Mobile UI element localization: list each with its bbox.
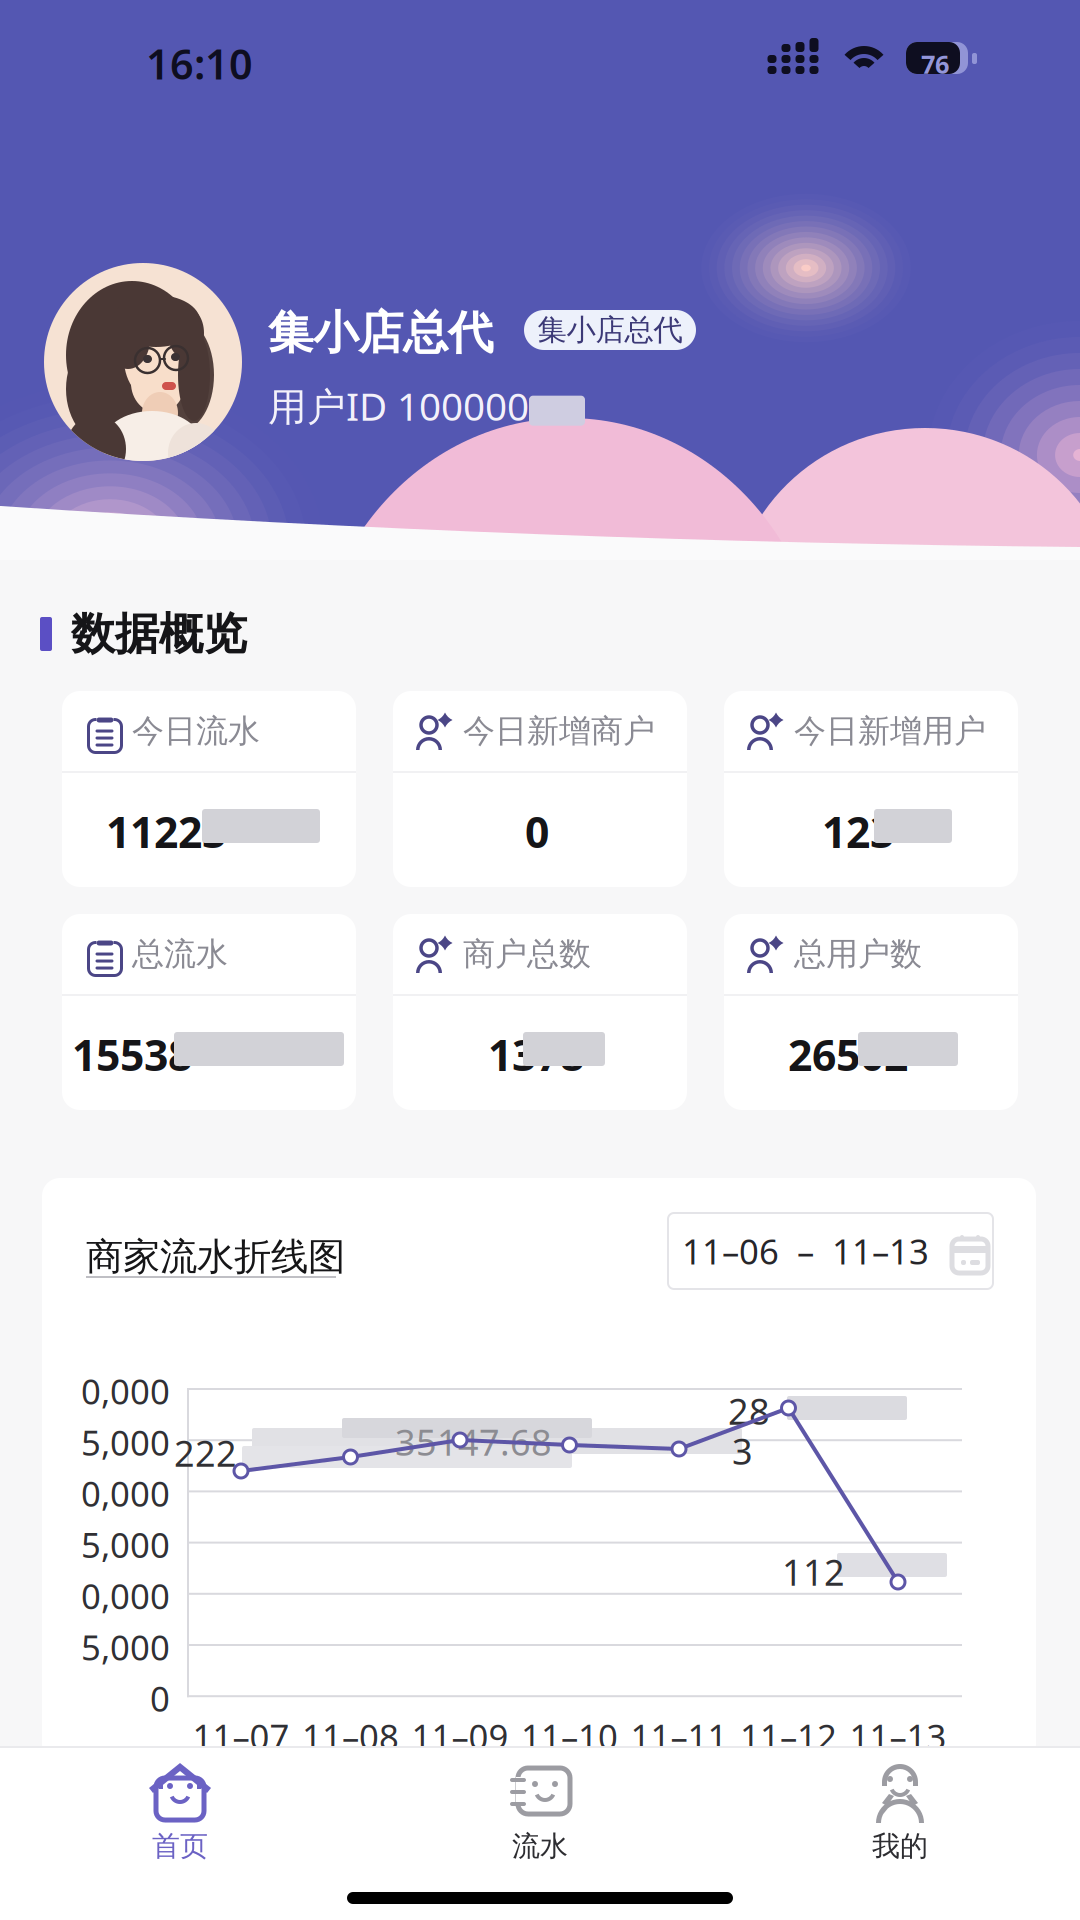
button[interactable]: 今日流水 xyxy=(62,691,356,887)
staticText: 5,000 xyxy=(81,1522,170,1568)
staticText: 首页 xyxy=(152,1829,208,1863)
button[interactable]: 商户总数 xyxy=(393,914,687,1110)
staticText: 11–08 xyxy=(302,1713,399,1759)
staticText: 123 xyxy=(822,803,894,860)
staticText: 0,000 xyxy=(81,1368,170,1414)
staticText: 5,000 xyxy=(81,1624,170,1670)
staticText: 15538 xyxy=(72,1026,192,1083)
staticText: 集小店总代 xyxy=(537,312,682,348)
staticText: 商户总数 xyxy=(463,934,591,974)
staticText: 1378 xyxy=(488,1026,584,1083)
staticText: 今日新增用户 xyxy=(794,711,986,751)
staticText: 我的 xyxy=(872,1829,928,1863)
staticText: 16:10 xyxy=(146,36,253,91)
staticText: 5,000 xyxy=(81,1419,170,1465)
button[interactable]: 集小店总代 xyxy=(524,310,696,350)
staticText: 流水 xyxy=(512,1829,568,1863)
staticText: 0,000 xyxy=(81,1573,170,1619)
button[interactable]: 流水 xyxy=(360,1760,720,1866)
staticText: 今日流水 xyxy=(132,711,260,751)
staticText: 11223 xyxy=(106,803,226,860)
staticText: 11–07 xyxy=(192,1713,289,1759)
staticText: 0,000 xyxy=(81,1470,170,1516)
button[interactable]: 今日新增商户 xyxy=(393,691,687,887)
staticText: 11–13 xyxy=(849,1713,946,1759)
staticText: 11–06 – 11–13 xyxy=(682,1228,929,1274)
staticText: 28 xyxy=(728,1387,770,1435)
staticText: 总用户数 xyxy=(794,934,922,974)
staticText: 总流水 xyxy=(132,934,228,974)
button[interactable]: 首页 xyxy=(0,1760,360,1866)
staticText: 3 xyxy=(732,1427,753,1475)
staticText: 11–10 xyxy=(521,1713,618,1759)
staticText: 0 xyxy=(150,1675,170,1721)
staticText: 112 xyxy=(782,1548,845,1596)
button[interactable]: 11–06 – 11–13 xyxy=(668,1213,993,1289)
staticText: 11–09 xyxy=(411,1713,508,1759)
staticText: 11–11 xyxy=(630,1713,727,1759)
staticText: 数据概览 xyxy=(71,607,247,661)
staticText: 222 xyxy=(174,1429,237,1477)
staticText: 商家流水折线图 xyxy=(86,1234,345,1280)
button[interactable]: 我的 xyxy=(720,1760,1080,1866)
staticText: 11–12 xyxy=(740,1713,837,1759)
staticText: 今日新增商户 xyxy=(463,711,655,751)
staticText: 35147.68 xyxy=(395,1418,552,1466)
staticText: 76 xyxy=(921,47,949,81)
staticText: 26502 xyxy=(788,1026,908,1083)
button[interactable]: 总用户数 xyxy=(724,914,1018,1110)
button[interactable]: 总流水 xyxy=(62,914,356,1110)
staticText: 0 xyxy=(525,803,549,860)
staticText: 集小店总代 xyxy=(268,305,493,361)
staticText: 用户ID 100000 xyxy=(268,380,529,431)
button[interactable]: 今日新增用户 xyxy=(724,691,1018,887)
